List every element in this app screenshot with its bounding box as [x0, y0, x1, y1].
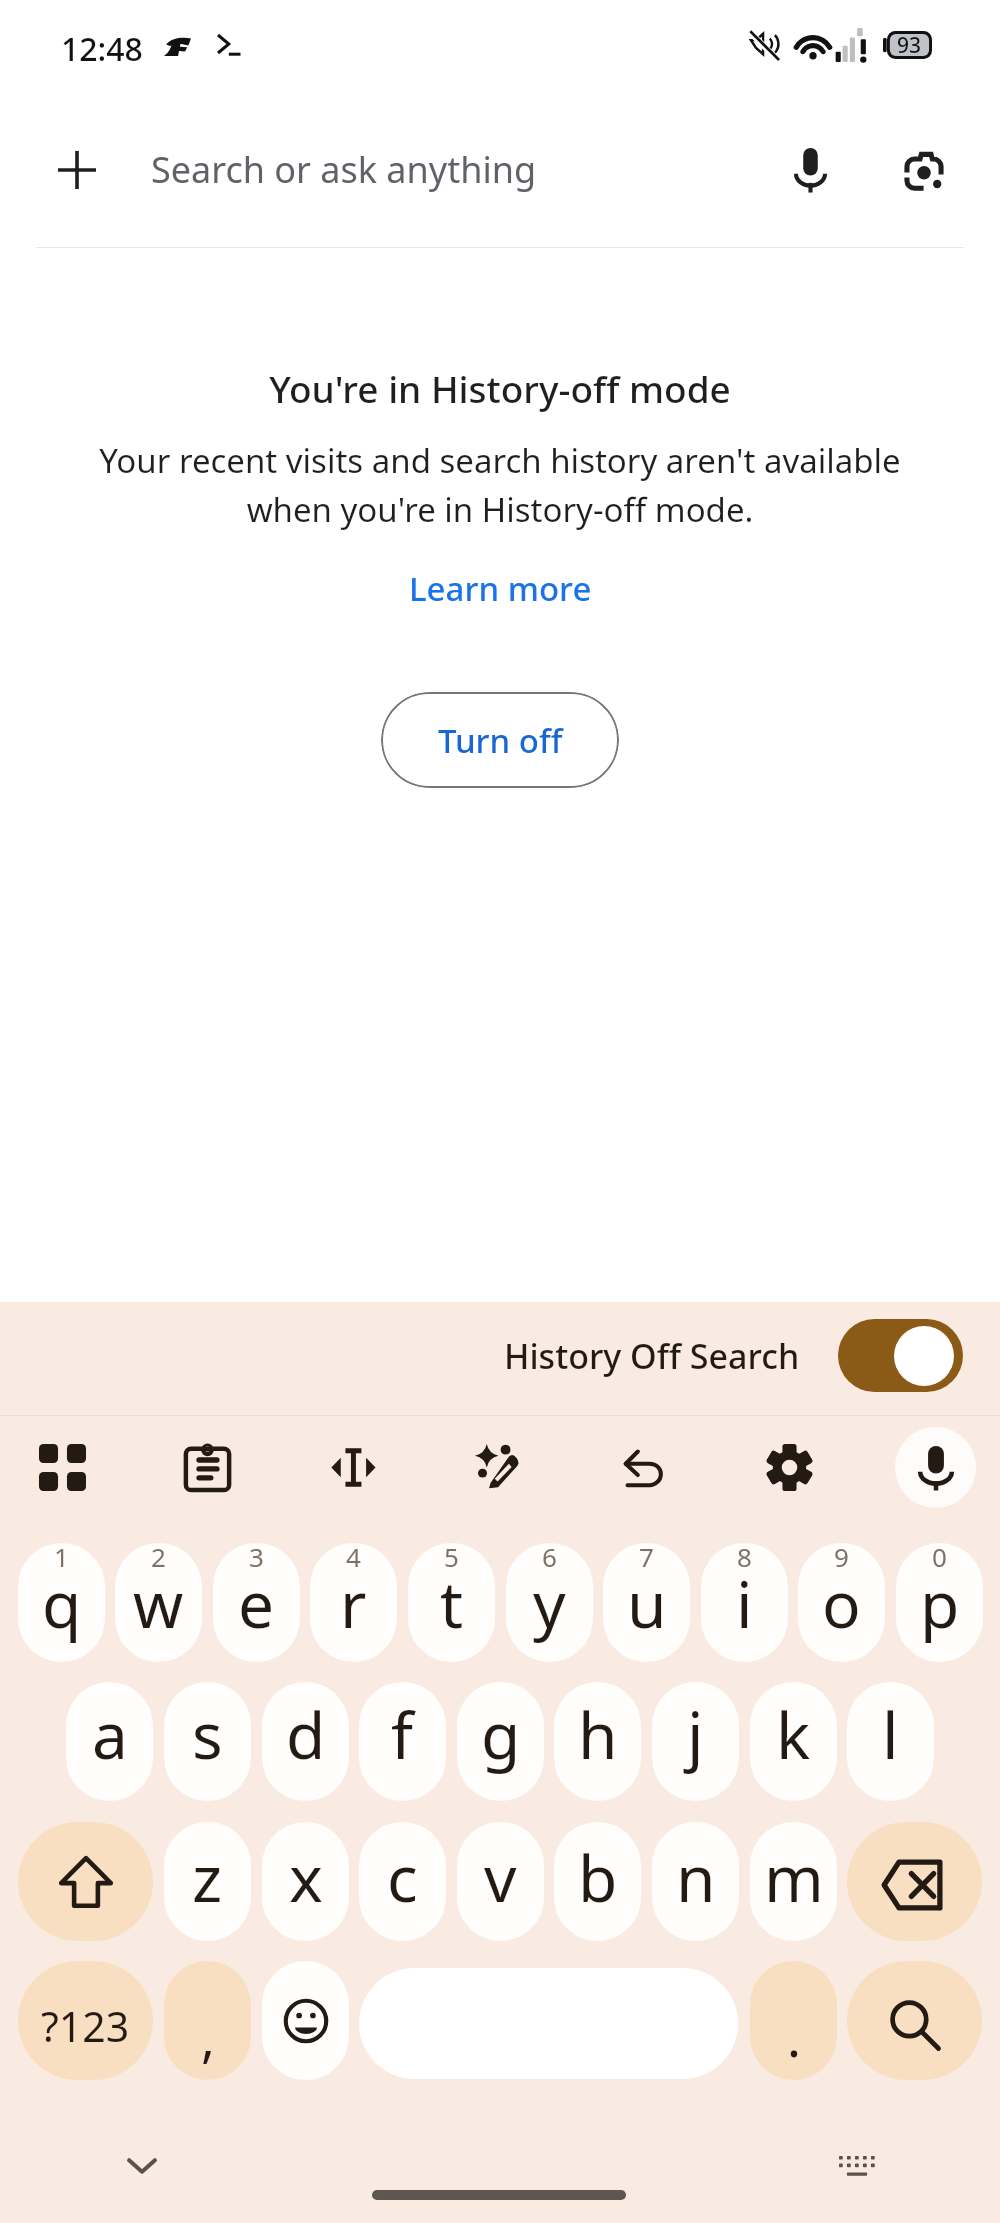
button[interactable]: f [359, 1682, 446, 1801]
staticText: 8 [737, 1543, 752, 1574]
staticText: 6 [542, 1543, 557, 1574]
staticText: 5 [444, 1543, 459, 1574]
staticText: x [289, 1834, 323, 1921]
button[interactable]: 5 [408, 1543, 495, 1662]
button[interactable]: l [847, 1682, 934, 1801]
staticText: 7 [639, 1543, 654, 1574]
staticText: z [192, 1834, 223, 1921]
staticText: 0 [932, 1543, 947, 1574]
button[interactable]: m [750, 1822, 837, 1941]
button[interactable]: , [164, 1961, 251, 2080]
button[interactable]: x [262, 1822, 349, 1941]
staticText: , [201, 2001, 215, 2072]
button[interactable]: Learn more [395, 561, 606, 616]
button[interactable]: g [457, 1682, 544, 1801]
staticText: k [776, 1691, 811, 1778]
staticText: ?123 [41, 1998, 130, 2054]
staticText: Learn more [409, 566, 592, 611]
staticText: b [578, 1834, 618, 1921]
button[interactable]: Space [359, 1968, 738, 2079]
staticText: Your recent visits and search history ar… [85, 438, 915, 531]
staticText: 3 [249, 1543, 264, 1574]
staticText: Turn off [438, 718, 563, 763]
staticText: 1 [54, 1543, 69, 1574]
button[interactable]: Settings [745, 1423, 833, 1511]
staticText: n [676, 1834, 716, 1921]
button[interactable]: Voice input [895, 1427, 976, 1508]
button[interactable]: a [66, 1682, 153, 1801]
button[interactable]: v [457, 1822, 544, 1941]
staticText: d [286, 1691, 326, 1778]
button[interactable]: h [554, 1682, 641, 1801]
button[interactable]: 0 [896, 1543, 983, 1662]
button[interactable]: 8 [701, 1543, 788, 1662]
button[interactable]: Turn off [381, 692, 619, 788]
staticText: l [882, 1691, 899, 1778]
button[interactable]: ?123 [18, 1961, 153, 2080]
staticText: j [687, 1691, 704, 1778]
button[interactable]: b [554, 1822, 641, 1941]
button[interactable]: d [262, 1682, 349, 1801]
button[interactable]: 1 [18, 1543, 105, 1662]
staticText: g [481, 1691, 521, 1778]
button[interactable]: Clipboard [163, 1423, 251, 1511]
staticText: . [787, 2001, 801, 2072]
staticText: y [533, 1560, 566, 1647]
button[interactable]: Text editing [308, 1423, 396, 1511]
button[interactable]: n [652, 1822, 739, 1941]
button[interactable]: 2 [115, 1543, 202, 1662]
staticText: u [627, 1560, 667, 1647]
button[interactable]: Shift [18, 1822, 153, 1941]
button[interactable]: New [46, 139, 108, 201]
staticText: 93 [897, 31, 922, 59]
staticText: m [764, 1834, 824, 1921]
staticText: Search or ask anything [151, 145, 537, 194]
button[interactable]: Hide keyboard [112, 2136, 172, 2196]
staticText: v [484, 1834, 517, 1921]
button[interactable]: Search [847, 1961, 982, 2080]
staticText: p [920, 1560, 960, 1647]
staticText: r [340, 1560, 367, 1647]
button[interactable]: 9 [798, 1543, 885, 1662]
staticText: 12:48 [61, 27, 143, 71]
staticText: w [133, 1560, 184, 1647]
staticText: f [391, 1691, 414, 1778]
button[interactable]: k [750, 1682, 837, 1801]
staticText: s [192, 1691, 223, 1778]
staticText: t [440, 1560, 464, 1647]
button[interactable]: History Off Search [504, 1319, 963, 1392]
button[interactable]: . [750, 1961, 837, 2080]
button[interactable]: 6 [506, 1543, 593, 1662]
button[interactable]: 7 [603, 1543, 690, 1662]
button[interactable]: Backspace [847, 1822, 982, 1941]
staticText: 9 [834, 1543, 849, 1574]
button[interactable]: j [652, 1682, 739, 1801]
button[interactable]: Switch keyboard [827, 2136, 887, 2196]
button[interactable]: Google Lens [891, 137, 957, 203]
staticText: c [387, 1834, 418, 1921]
staticText: q [42, 1560, 82, 1647]
staticText: You're in History-off mode [269, 363, 731, 413]
button[interactable]: Emoji [262, 1961, 349, 2080]
button[interactable]: c [359, 1822, 446, 1941]
button[interactable]: z [164, 1822, 251, 1941]
button[interactable]: Undo [599, 1423, 687, 1511]
staticText: o [822, 1560, 861, 1647]
button[interactable]: Proofread [454, 1423, 542, 1511]
button[interactable]: 3 [213, 1543, 300, 1662]
staticText: 4 [346, 1543, 361, 1574]
button[interactable]: Voice search [777, 137, 843, 203]
staticText: 2 [151, 1543, 166, 1574]
staticText: h [578, 1691, 618, 1778]
button[interactable]: 4 [310, 1543, 397, 1662]
staticText: i [736, 1560, 753, 1647]
staticText: e [238, 1560, 275, 1647]
staticText: History Off Search [504, 1333, 800, 1379]
button[interactable]: Apps [18, 1423, 106, 1511]
staticText: a [92, 1691, 128, 1778]
button[interactable]: s [164, 1682, 251, 1801]
